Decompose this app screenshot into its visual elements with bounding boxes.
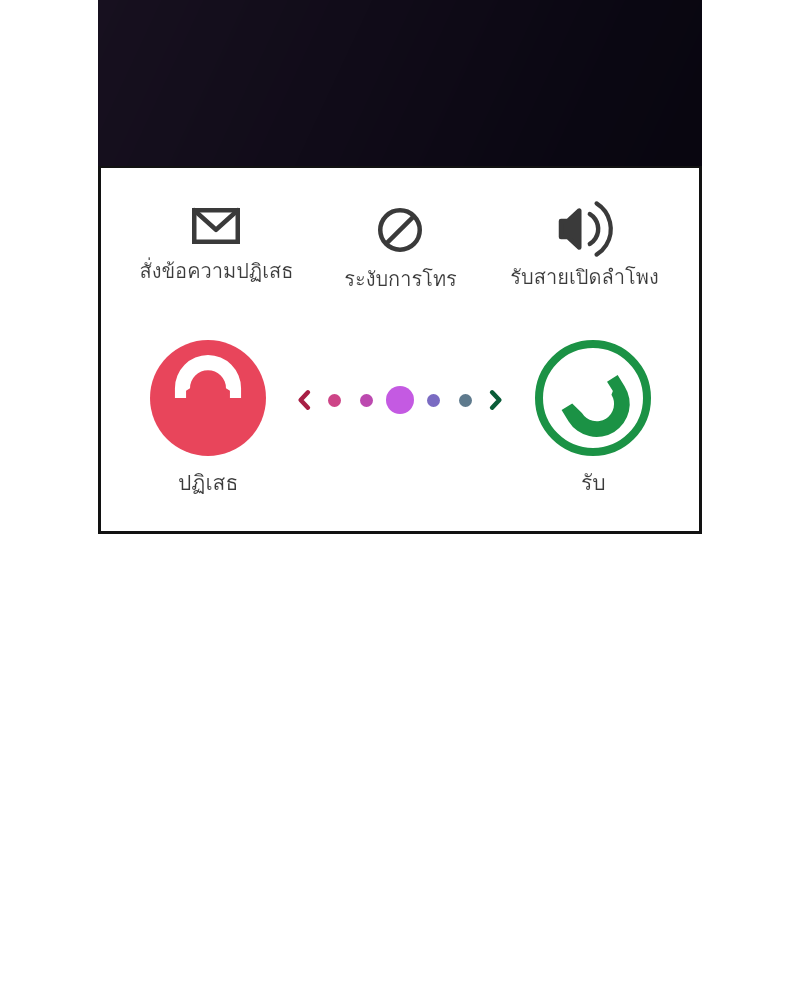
button[interactable]: Answer call xyxy=(535,340,651,499)
staticText: ระงับการโทร xyxy=(344,263,457,295)
button[interactable]: Decline call xyxy=(150,340,266,499)
staticText: รับ xyxy=(581,466,606,499)
button[interactable]: Block call xyxy=(314,208,486,295)
staticText: รับสายเปิดลำโพง xyxy=(510,261,659,293)
button[interactable]: Answer with speaker xyxy=(486,208,682,293)
button[interactable]: Send reject message xyxy=(118,208,314,287)
button[interactable]: Slide for more options xyxy=(297,386,503,414)
staticText: ปฏิเสธ xyxy=(178,466,239,499)
staticText: สั่งข้อความปฏิเสธ xyxy=(139,255,294,287)
